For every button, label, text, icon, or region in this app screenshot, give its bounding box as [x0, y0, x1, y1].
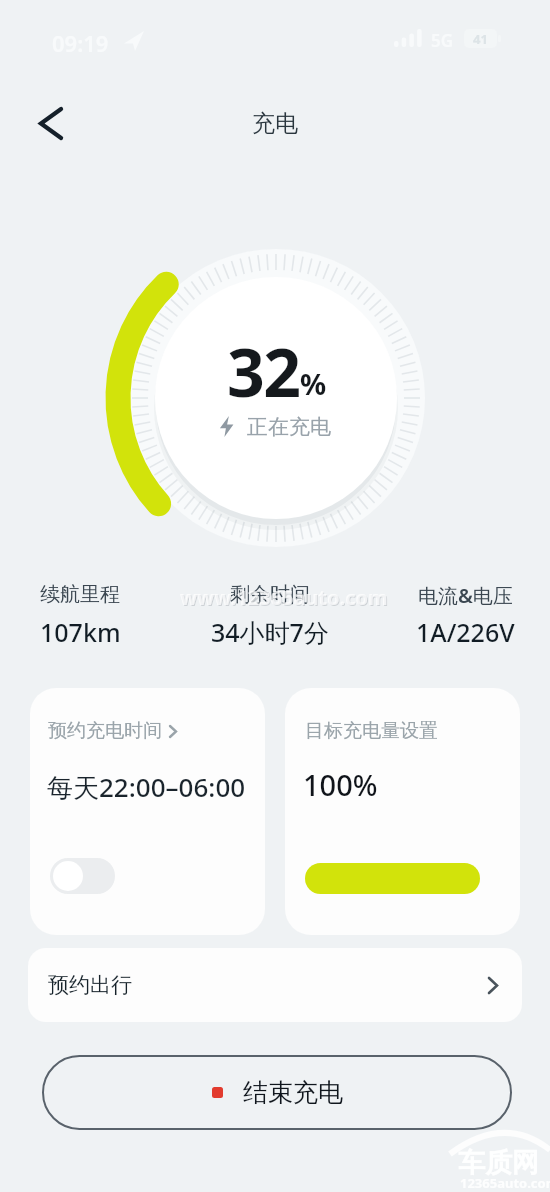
staticText: 34小时7分	[211, 615, 329, 649]
staticText: 1A/226V	[416, 615, 515, 649]
button[interactable]	[50, 858, 115, 894]
staticText: 预约充电时间	[48, 719, 162, 743]
staticText: 5G	[431, 29, 454, 52]
staticText: 车质网	[458, 1146, 539, 1180]
staticText: 目标充电量设置	[305, 719, 438, 743]
button[interactable]: 预约充电时间	[30, 688, 265, 935]
staticText: 结束充电	[243, 1077, 343, 1108]
staticText: 预约出行	[48, 972, 132, 998]
staticText: 续航里程	[40, 582, 120, 607]
button[interactable]: 预约出行	[28, 948, 522, 1022]
staticText: 41	[473, 30, 488, 48]
button[interactable]	[305, 863, 480, 894]
button[interactable]	[27, 95, 75, 151]
staticText: 正在充电	[247, 414, 331, 440]
staticText: 12365auto.com	[460, 1174, 550, 1192]
button[interactable]: 结束充电	[42, 1055, 512, 1130]
staticText: 剩余时间	[230, 582, 310, 607]
staticText: 107km	[40, 615, 121, 649]
staticText: 电流&电压	[418, 582, 513, 609]
staticText: 09:19	[52, 28, 109, 58]
staticText: www.12365auto.com	[180, 584, 388, 611]
staticText: www.12365auto.com	[181, 585, 389, 612]
button[interactable]: 目标充电量设置	[285, 688, 520, 935]
staticText: 32	[227, 326, 300, 410]
staticText: 每天22:00–06:00	[47, 769, 246, 805]
staticText: %	[300, 364, 327, 403]
staticText: 100%	[303, 765, 378, 804]
staticText: 充电	[252, 109, 298, 138]
